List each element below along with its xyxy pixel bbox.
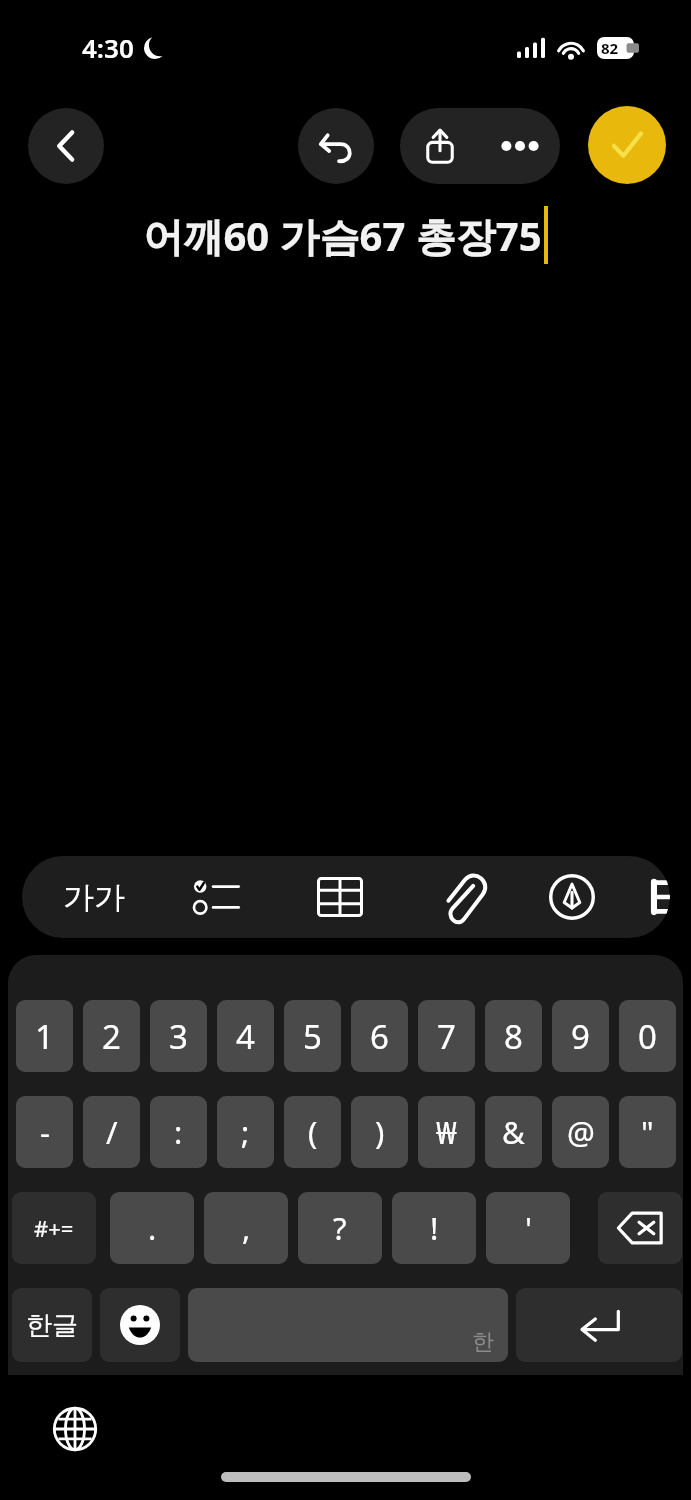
button[interactable]: 4 — [217, 1000, 274, 1072]
staticText: 4 — [236, 1014, 255, 1059]
staticText: ? — [333, 1207, 347, 1249]
staticText: 8 — [504, 1014, 523, 1059]
button[interactable]: Backspace — [598, 1192, 682, 1264]
button[interactable]: 가가 — [44, 856, 144, 938]
button[interactable]: / — [83, 1096, 140, 1168]
button[interactable]: ! — [392, 1192, 476, 1264]
button[interactable]: Checklist — [162, 856, 272, 938]
button[interactable]: ₩ — [418, 1096, 475, 1168]
staticText: 0 — [638, 1014, 657, 1059]
button[interactable]: Attach — [408, 856, 516, 938]
button[interactable]: Markup — [522, 856, 622, 938]
staticText: " — [641, 1111, 654, 1153]
staticText: #+= — [34, 1213, 74, 1243]
button[interactable]: , — [204, 1192, 288, 1264]
staticText: 5 — [303, 1014, 322, 1059]
button[interactable]: Table — [284, 856, 396, 938]
staticText: 한 — [472, 1328, 494, 1356]
button[interactable]: Change keyboard — [44, 1398, 106, 1460]
staticText: 82 — [601, 38, 619, 58]
staticText: 2 — [102, 1014, 121, 1059]
staticText: . — [148, 1207, 157, 1249]
staticText: 3 — [169, 1014, 188, 1059]
staticText: ₩ — [436, 1111, 457, 1153]
staticText: @ — [567, 1111, 595, 1153]
button[interactable]: : — [150, 1096, 207, 1168]
button[interactable]: " — [619, 1096, 676, 1168]
staticText: ' — [525, 1207, 532, 1249]
button[interactable]: & — [485, 1096, 542, 1168]
button[interactable]: Done — [588, 106, 666, 184]
staticText: - — [40, 1111, 50, 1153]
staticText: ; — [241, 1111, 250, 1153]
staticText: 한글 — [26, 1309, 78, 1342]
button[interactable]: Return — [516, 1288, 682, 1362]
button[interactable]: . — [110, 1192, 194, 1264]
staticText: ) — [375, 1111, 385, 1153]
button[interactable]: 한글 — [12, 1288, 92, 1362]
button[interactable]: 5 — [284, 1000, 341, 1072]
staticText: : — [174, 1111, 183, 1153]
staticText: 1 — [35, 1014, 54, 1059]
staticText: / — [106, 1111, 118, 1153]
button[interactable]: ( — [284, 1096, 341, 1168]
staticText: 어깨60 가슴67 총장75 — [143, 208, 542, 263]
button[interactable]: Share — [400, 108, 480, 184]
button[interactable]: ; — [217, 1096, 274, 1168]
button[interactable]: 0 — [619, 1000, 676, 1072]
staticText: ! — [430, 1207, 439, 1249]
staticText: , — [242, 1207, 251, 1249]
button[interactable]: - — [16, 1096, 73, 1168]
button[interactable]: Undo — [298, 108, 374, 184]
staticText: 9 — [571, 1014, 590, 1059]
staticText: ( — [308, 1111, 318, 1153]
button[interactable]: 6 — [351, 1000, 408, 1072]
button[interactable]: Emoji — [100, 1288, 180, 1362]
button[interactable]: More options — [480, 108, 560, 184]
button[interactable] — [650, 856, 670, 938]
staticText: & — [502, 1111, 525, 1153]
button[interactable]: 7 — [418, 1000, 475, 1072]
staticText: 가가 — [63, 878, 125, 917]
button[interactable]: Space — [188, 1288, 508, 1362]
button[interactable]: 2 — [83, 1000, 140, 1072]
button[interactable]: 8 — [485, 1000, 542, 1072]
staticText: 7 — [437, 1014, 456, 1059]
button[interactable]: 3 — [150, 1000, 207, 1072]
button[interactable]: #+= — [12, 1192, 96, 1264]
staticText: 6 — [370, 1014, 389, 1059]
button[interactable]: ) — [351, 1096, 408, 1168]
staticText: 4:30 — [82, 30, 134, 65]
button[interactable]: 9 — [552, 1000, 609, 1072]
button[interactable]: Back — [28, 108, 104, 184]
button[interactable]: @ — [552, 1096, 609, 1168]
button[interactable]: 1 — [16, 1000, 73, 1072]
button[interactable]: ? — [298, 1192, 382, 1264]
button[interactable]: ' — [486, 1192, 570, 1264]
